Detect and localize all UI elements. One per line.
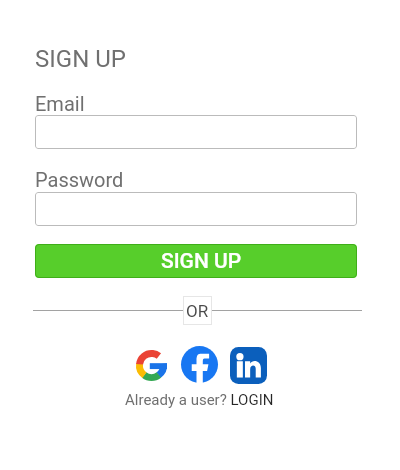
staticText: SIGN UP xyxy=(35,45,126,73)
button[interactable]: Already a user? LOGIN xyxy=(125,391,274,409)
button[interactable]: Password input xyxy=(35,192,357,226)
staticText: Email xyxy=(35,92,85,115)
button[interactable]: SIGN UP xyxy=(35,244,357,278)
staticText: SIGN UP xyxy=(161,249,242,274)
button[interactable]: Email input xyxy=(35,115,357,149)
staticText: Password xyxy=(35,168,124,191)
button[interactable]: Sign up with Facebook xyxy=(181,346,218,383)
button[interactable]: Sign up with LinkedIn xyxy=(230,347,267,384)
staticText: OR xyxy=(186,301,209,321)
button[interactable]: Sign up with Google xyxy=(136,350,167,381)
